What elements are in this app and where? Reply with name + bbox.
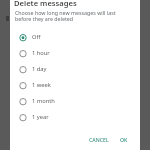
staticText: Choose how long new messages will last b… (15, 9, 116, 23)
staticText: 1 year (32, 113, 49, 121)
button[interactable]: OK (117, 134, 131, 145)
staticText: 1 week (32, 81, 51, 89)
staticText: 1 day (32, 65, 47, 73)
button[interactable]: Off (10, 29, 140, 45)
staticText: CANCEL (89, 136, 109, 143)
staticText: 1 hour (32, 49, 50, 57)
button[interactable]: 1 day (10, 61, 140, 77)
staticText: 1 month (32, 97, 55, 105)
button[interactable]: 1 week (10, 77, 140, 93)
button[interactable]: 1 hour (10, 45, 140, 61)
staticText: Delete messages (14, 0, 77, 8)
button[interactable]: 1 year (10, 109, 140, 125)
button[interactable]: 1 month (10, 93, 140, 109)
button[interactable]: CANCEL (86, 134, 112, 145)
staticText: Off (32, 33, 41, 41)
staticText: OK (120, 136, 128, 143)
